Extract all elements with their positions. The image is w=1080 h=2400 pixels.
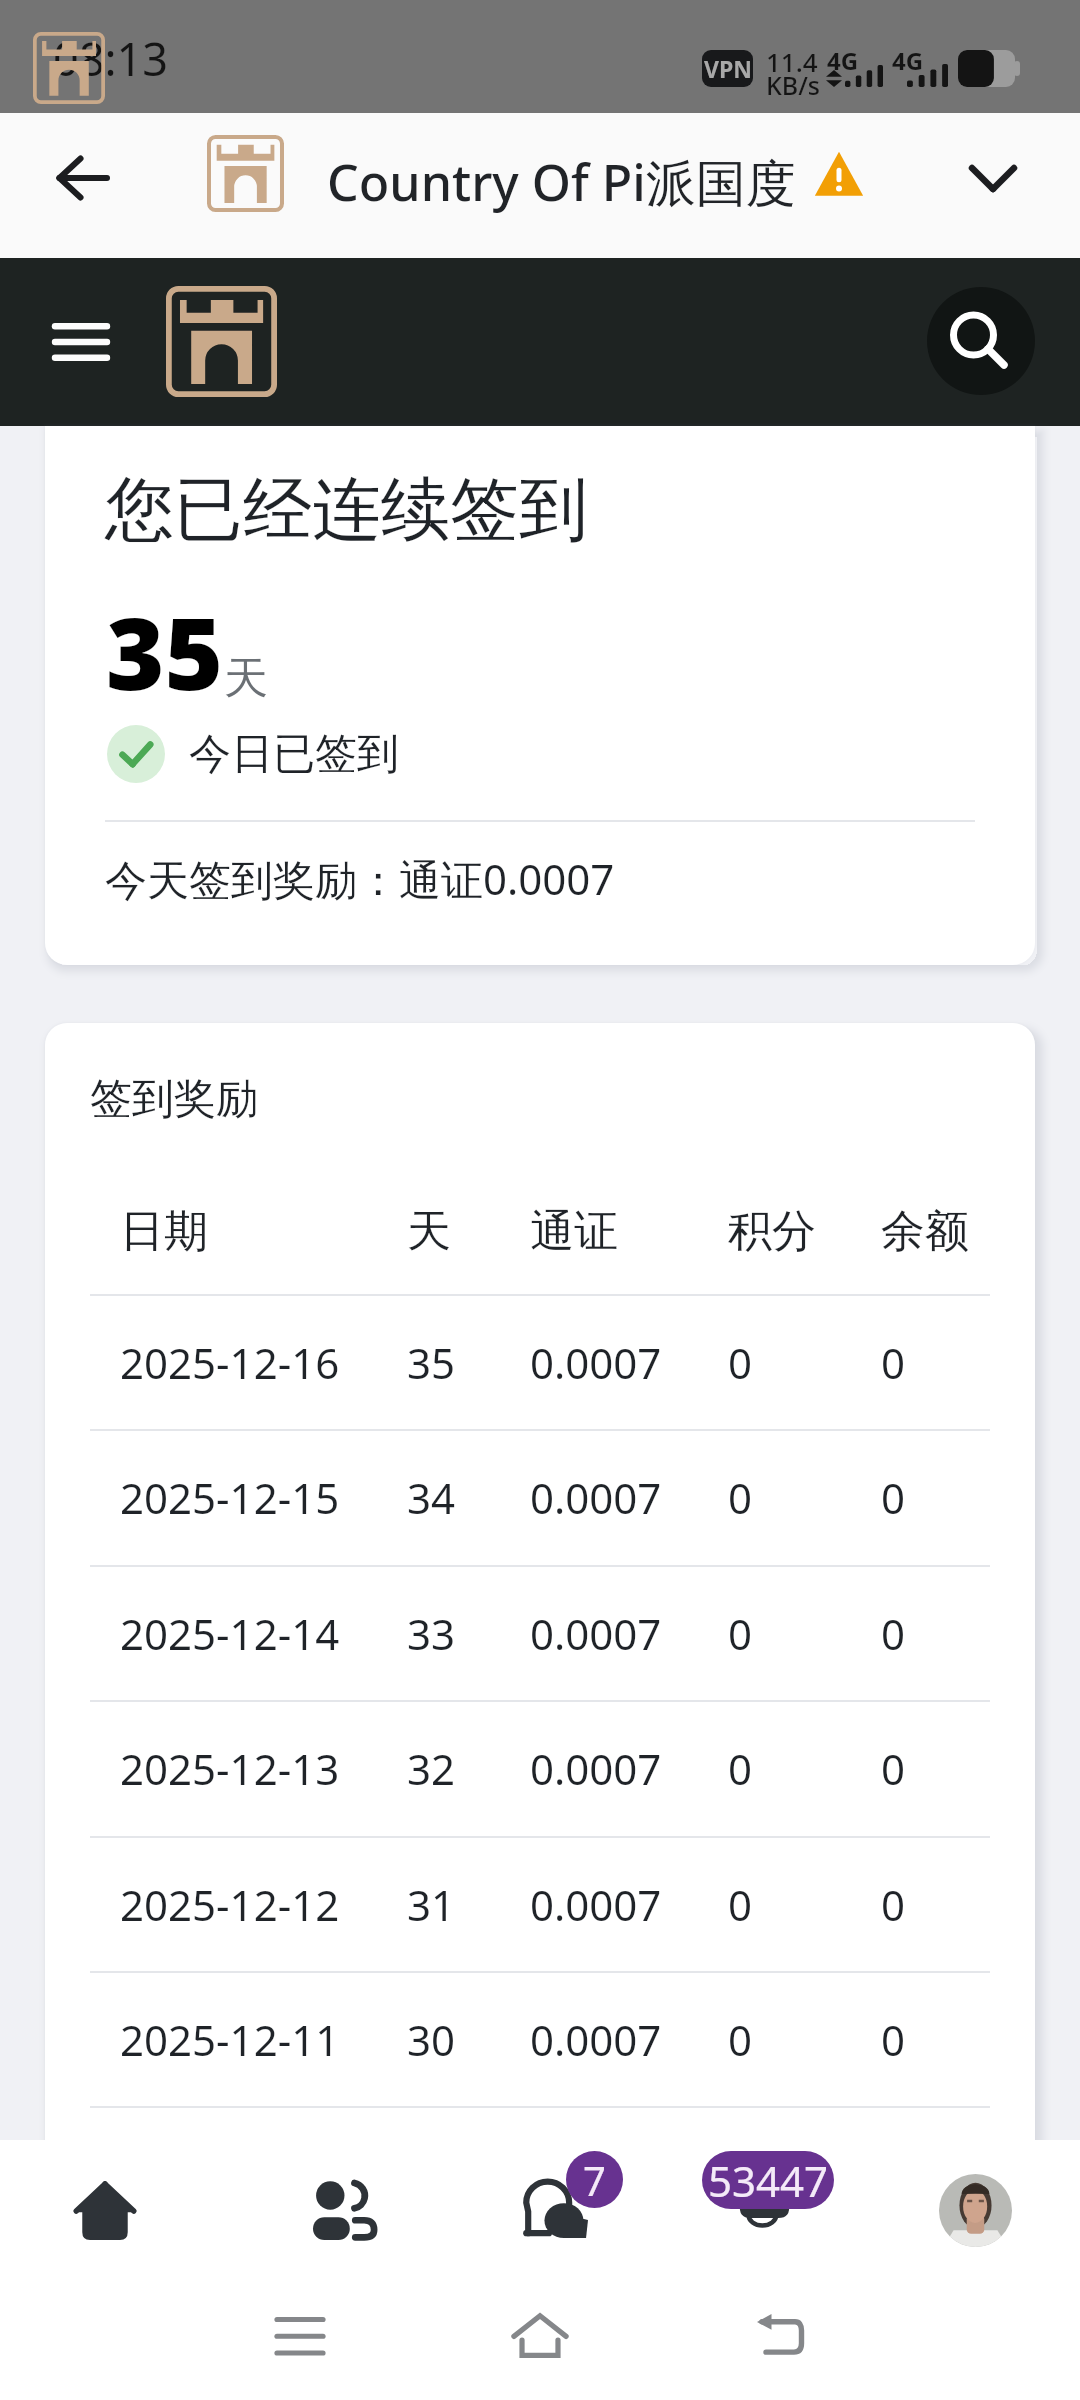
staticText: 余额 — [881, 1204, 969, 1259]
button[interactable]: 日期 — [45, 1164, 1035, 1259]
staticText: 2025-12-12 — [120, 1876, 340, 1933]
staticText: 2025-12-14 — [120, 1605, 340, 1662]
staticText: 32 — [407, 1740, 456, 1797]
staticText: 4G — [827, 44, 859, 77]
staticText: 4G — [892, 44, 924, 77]
staticText: 31 — [407, 1876, 456, 1933]
staticText: 天 — [407, 1204, 451, 1259]
staticText: KB/s — [766, 68, 820, 102]
staticText: 35 — [407, 1334, 456, 1391]
staticText: VPN — [704, 53, 752, 84]
staticText: 7 — [583, 2153, 606, 2207]
staticText: 通证 — [530, 1204, 618, 1259]
staticText: 0.0007 — [530, 1605, 662, 1662]
staticText: 0.0007 — [530, 1334, 662, 1391]
button[interactable]: 2025-12-14 — [45, 1565, 1035, 1660]
staticText: 0 — [728, 1876, 753, 1933]
staticText: 今日已签到 — [189, 728, 399, 781]
staticText: 0.0007 — [530, 1740, 662, 1797]
button[interactable]: Search — [927, 287, 1035, 395]
staticText: 11.4 — [766, 44, 818, 79]
staticText: 34 — [407, 1469, 456, 1526]
staticText: 2025-12-13 — [120, 1740, 340, 1797]
button[interactable]: Recents — [240, 2270, 360, 2400]
button[interactable]: Notifications — [690, 2140, 850, 2270]
button[interactable]: Home — [480, 2270, 600, 2400]
staticText: Country Of Pi派国度 — [327, 148, 796, 216]
button[interactable]: 2025-12-16 — [45, 1294, 1035, 1389]
staticText: 2025-12-15 — [120, 1469, 340, 1526]
staticText: 0 — [881, 1334, 906, 1391]
button[interactable]: 2025-12-15 — [45, 1429, 1035, 1524]
staticText: 0 — [881, 2011, 906, 2068]
staticText: 0.0007 — [530, 2011, 662, 2068]
staticText: 0 — [881, 1740, 906, 1797]
button[interactable]: Home — [38, 2150, 172, 2270]
staticText: 0 — [728, 1605, 753, 1662]
staticText: 您已经连续签到 — [105, 467, 588, 554]
button[interactable]: Expand — [933, 118, 1053, 238]
staticText: 0.0007 — [530, 1469, 662, 1526]
staticText: 0 — [881, 1876, 906, 1933]
staticText: 0 — [728, 2011, 753, 2068]
staticText: 30 — [407, 2011, 456, 2068]
staticText: 08:13 — [53, 28, 169, 89]
staticText: 0 — [881, 1469, 906, 1526]
button[interactable]: Menu — [26, 287, 136, 397]
staticText: 0 — [728, 1469, 753, 1526]
button[interactable]: Back — [720, 2270, 840, 2400]
staticText: 0.0007 — [530, 1876, 662, 1933]
staticText: 0 — [728, 1740, 753, 1797]
button[interactable]: 2025-12-12 — [45, 1836, 1035, 1931]
staticText: 53447 — [708, 2152, 829, 2209]
staticText: 签到奖励 — [90, 1073, 258, 1126]
staticText: 2025-12-16 — [120, 1334, 340, 1391]
button[interactable]: Messages — [488, 2140, 648, 2270]
button[interactable]: 2025-12-11 — [45, 1971, 1035, 2066]
staticText: 35 — [106, 583, 224, 719]
staticText: 0 — [728, 1334, 753, 1391]
button[interactable]: Back — [22, 118, 142, 238]
staticText: 2025-12-11 — [120, 2011, 340, 2068]
staticText: 日期 — [120, 1204, 208, 1259]
staticText: 今天签到奖励：通证0.0007 — [105, 850, 615, 907]
button[interactable]: 2025-12-13 — [45, 1700, 1035, 1795]
staticText: 天 — [224, 651, 268, 706]
button[interactable]: Profile — [908, 2150, 1042, 2270]
button[interactable]: Community — [278, 2150, 412, 2270]
staticText: 33 — [407, 1605, 456, 1662]
staticText: 0 — [881, 1605, 906, 1662]
staticText: 积分 — [728, 1204, 816, 1259]
